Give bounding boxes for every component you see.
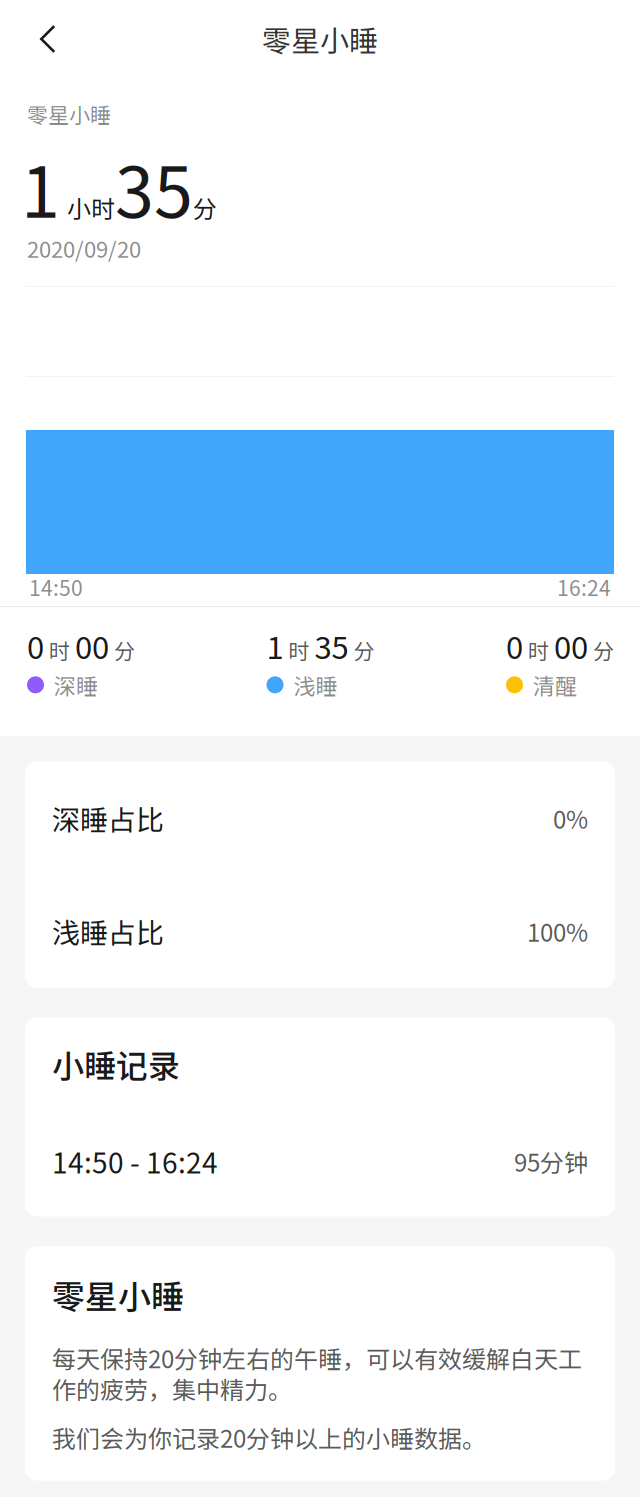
button[interactable]: 深睡占比: [25, 762, 615, 875]
staticText: 95分钟: [514, 1144, 588, 1179]
staticText: 浅睡占比: [52, 911, 164, 951]
staticText: 1: [21, 137, 60, 238]
staticText: 深睡占比: [52, 798, 164, 838]
staticText: 00: [554, 623, 588, 668]
staticText: 零星小睡: [27, 99, 111, 129]
staticText: 零星小睡: [52, 1271, 184, 1318]
staticText: 35: [314, 623, 348, 668]
staticText: 深睡: [54, 669, 98, 701]
staticText: 14:50: [29, 572, 83, 602]
staticText: 1: [266, 623, 283, 668]
staticText: 小时: [67, 190, 115, 225]
staticText: 35: [115, 137, 193, 238]
staticText: 时: [49, 635, 70, 665]
staticText: 清醒: [533, 669, 577, 701]
staticText: 00: [75, 623, 109, 668]
button[interactable]: 浅睡占比: [25, 875, 615, 988]
staticText: 时: [528, 635, 549, 665]
staticText: 每天保持20分钟左右的午睡，可以有效缓解白天工作的疲劳，集中精力。: [52, 1340, 582, 1406]
staticText: 小睡记录: [52, 1041, 180, 1087]
staticText: 分: [193, 190, 217, 225]
staticText: 0: [27, 623, 44, 668]
staticText: 分: [593, 635, 614, 665]
staticText: 我们会为你记录20分钟以上的小睡数据。: [52, 1420, 486, 1455]
staticText: 100%: [527, 914, 588, 949]
staticText: 0%: [553, 801, 588, 836]
staticText: 时: [288, 635, 309, 665]
staticText: 0: [506, 623, 523, 668]
staticText: 14:50 - 16:24: [52, 1141, 218, 1182]
button[interactable]: Back: [0, 0, 77, 78]
staticText: 2020/09/20: [27, 232, 141, 264]
staticText: 浅睡: [293, 669, 337, 701]
staticText: 分: [353, 635, 374, 665]
staticText: 零星小睡: [262, 18, 378, 60]
staticText: 16:24: [557, 572, 611, 602]
staticText: 分: [114, 635, 135, 665]
